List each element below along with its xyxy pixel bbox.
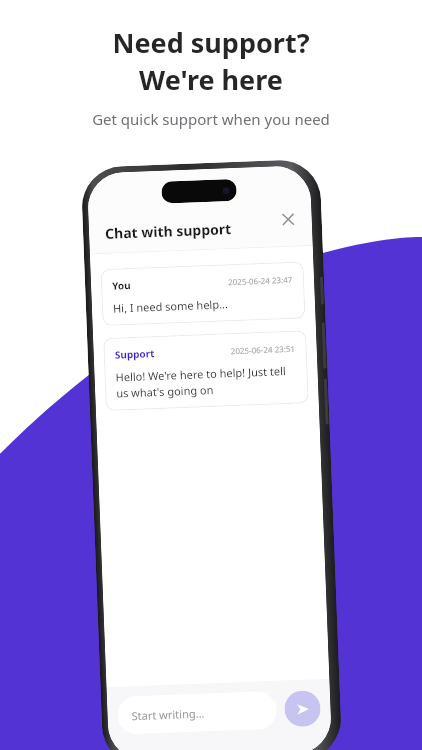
staticText: Hi, I need some help...	[113, 296, 228, 316]
button[interactable]: Start writing...	[117, 691, 277, 735]
staticText: Hello! We're here to help! Just tell us …	[115, 363, 297, 401]
button[interactable]: Send message	[284, 690, 321, 727]
button[interactable]: You	[100, 261, 305, 326]
staticText: Support	[114, 346, 155, 362]
staticText: 2025-06-24 23:51	[230, 343, 296, 356]
staticText: We're here	[139, 61, 283, 98]
button[interactable]: Chat with support	[103, 217, 234, 245]
staticText: 2025-06-24 23:47	[228, 274, 293, 287]
staticText: You	[112, 278, 131, 293]
button[interactable]: Support	[103, 330, 309, 411]
staticText: Need support?	[112, 24, 310, 61]
staticText: Chat with support	[105, 219, 232, 243]
staticText: Start writing...	[131, 705, 205, 723]
staticText: Get quick support when you need	[92, 109, 330, 129]
button[interactable]: Close chat	[276, 207, 299, 230]
